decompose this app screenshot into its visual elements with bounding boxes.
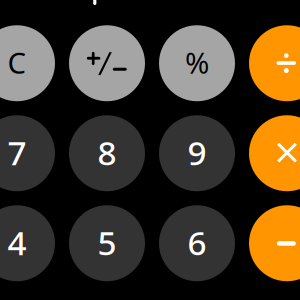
button[interactable]: 8 [69, 115, 145, 191]
staticText: C [7, 43, 26, 82]
button[interactable]: 5 [69, 205, 145, 281]
button[interactable]: 4 [0, 205, 55, 281]
button[interactable]: Percent [159, 25, 235, 101]
button[interactable]: 7 [0, 115, 55, 191]
staticText: 8 [97, 130, 116, 174]
staticText: 4 [7, 220, 26, 264]
button[interactable]: Minus [249, 205, 300, 281]
staticText: 7 [7, 130, 26, 174]
button[interactable]: Multiply [249, 115, 300, 191]
staticText: % [185, 43, 209, 82]
button[interactable]: Plus minus [69, 25, 145, 101]
button[interactable]: 9 [159, 115, 235, 191]
button[interactable]: Clear [0, 25, 55, 101]
staticText: 9 [187, 130, 206, 174]
staticText: 5 [97, 220, 116, 264]
button[interactable]: Divide [249, 25, 300, 101]
button[interactable]: 6 [159, 205, 235, 281]
staticText: 6 [187, 220, 206, 264]
